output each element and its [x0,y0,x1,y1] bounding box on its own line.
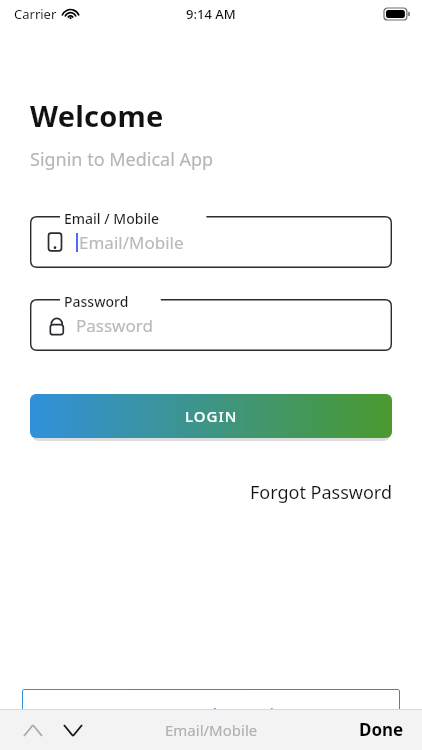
staticText: Done [359,718,404,741]
staticText: Email/Mobile [79,231,184,254]
button[interactable]: Done [341,710,422,749]
staticText: LOGIN [185,406,238,426]
button[interactable]: Previous field [16,713,50,747]
button[interactable]: New User ?. Please sign up [22,689,400,741]
button[interactable]: Forgot Password [0,480,422,505]
staticText: 9:14 AM [186,5,236,23]
staticText: Email/Mobile [165,720,258,740]
staticText: Password [64,292,129,311]
button[interactable]: LOGIN [30,394,392,438]
button[interactable]: Email / Mobile [30,216,392,268]
staticText: New User ?. Please sign up [98,703,324,728]
staticText: Email / Mobile [64,209,159,228]
button[interactable]: Next field [56,713,90,747]
staticText: Password [76,314,153,337]
staticText: Welcome [30,96,164,135]
button[interactable]: Password [30,299,392,351]
staticText: Carrier [14,5,57,23]
staticText: Signin to Medical App [30,147,214,172]
